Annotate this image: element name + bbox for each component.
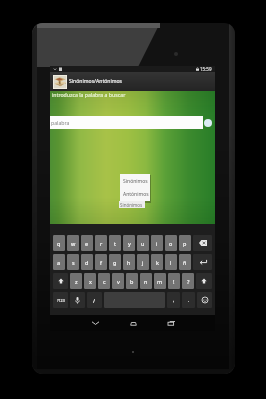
button[interactable]: h xyxy=(123,254,135,270)
button[interactable]: x xyxy=(84,273,96,289)
button[interactable]: Home xyxy=(121,315,145,331)
button[interactable]: palabra xyxy=(50,116,203,129)
button[interactable]: w xyxy=(67,235,79,251)
staticText: 15:59 xyxy=(200,66,212,72)
staticText: Sinónimos xyxy=(120,202,143,208)
staticText: w xyxy=(71,240,76,247)
staticText: , xyxy=(173,297,175,304)
staticText: t xyxy=(114,240,116,247)
staticText: ñ xyxy=(183,259,187,266)
staticText: introduzca la palabra a buscar xyxy=(52,91,126,98)
staticText: ?123 xyxy=(57,298,65,303)
button[interactable]: d xyxy=(81,254,93,270)
staticText: o xyxy=(169,240,173,247)
staticText: Antónimos xyxy=(123,191,149,198)
button[interactable]: , xyxy=(167,292,180,308)
staticText: d xyxy=(85,259,89,266)
button[interactable]: k xyxy=(151,254,163,270)
staticText: e xyxy=(85,240,89,247)
staticText: y xyxy=(128,240,131,247)
button[interactable]: . xyxy=(182,292,195,308)
button[interactable]: c xyxy=(98,273,110,289)
staticText: h xyxy=(127,259,131,266)
staticText: palabra xyxy=(51,119,70,126)
button[interactable]: ! xyxy=(168,273,180,289)
button[interactable]: m xyxy=(154,273,166,289)
staticText: Sinónimos/Antónimos xyxy=(69,78,123,85)
button[interactable]: Voice input xyxy=(70,292,85,308)
staticText: a xyxy=(57,259,61,266)
button[interactable]: Recents xyxy=(159,315,183,331)
staticText: n xyxy=(144,278,148,285)
button[interactable]: p xyxy=(179,235,191,251)
button[interactable]: Antónimos xyxy=(120,188,150,201)
button[interactable]: q xyxy=(53,235,65,251)
button[interactable]: o xyxy=(165,235,177,251)
staticText: r xyxy=(100,240,103,247)
other: App icon xyxy=(53,75,67,89)
staticText: u xyxy=(141,240,145,247)
button[interactable]: z xyxy=(70,273,82,289)
button[interactable]: u xyxy=(137,235,149,251)
button[interactable]: Back xyxy=(83,315,107,331)
staticText: z xyxy=(75,278,78,285)
staticText: s xyxy=(72,259,75,266)
button[interactable]: n xyxy=(140,273,152,289)
staticText: v xyxy=(117,278,120,285)
staticText: b xyxy=(130,278,134,285)
button[interactable]: a xyxy=(53,254,65,270)
staticText: / xyxy=(93,297,96,304)
button[interactable]: i xyxy=(151,235,163,251)
staticText: l xyxy=(170,259,172,266)
staticText: p xyxy=(183,240,187,247)
button[interactable]: ?123 xyxy=(53,292,68,308)
staticText: ? xyxy=(187,278,190,285)
staticText: i xyxy=(156,240,158,247)
button[interactable]: App icon xyxy=(50,72,215,91)
button[interactable]: j xyxy=(137,254,149,270)
button[interactable]: Sinónimos xyxy=(119,201,145,208)
button[interactable]: Emoji xyxy=(197,292,212,308)
button[interactable]: t xyxy=(109,235,121,251)
staticText: ! xyxy=(173,278,175,285)
staticText: j xyxy=(142,259,144,266)
button[interactable]: ñ xyxy=(179,254,191,270)
button[interactable]: g xyxy=(109,254,121,270)
button[interactable]: Shift xyxy=(53,273,68,289)
button[interactable]: y xyxy=(123,235,135,251)
button[interactable]: v xyxy=(112,273,124,289)
button[interactable]: r xyxy=(95,235,107,251)
staticText: m xyxy=(157,278,163,285)
staticText: . xyxy=(188,297,190,304)
staticText: f xyxy=(100,259,102,266)
staticText: x xyxy=(89,278,92,285)
button[interactable]: ? xyxy=(182,273,194,289)
staticText: c xyxy=(103,278,106,285)
button[interactable]: f xyxy=(95,254,107,270)
staticText: Sinónimos xyxy=(123,178,148,185)
button[interactable]: Enter xyxy=(193,254,212,270)
button[interactable]: Sinónimos xyxy=(120,174,150,188)
button[interactable]: b xyxy=(126,273,138,289)
button[interactable]: l xyxy=(165,254,177,270)
button[interactable]: Backspace xyxy=(193,235,212,251)
staticText: q xyxy=(57,240,61,247)
button[interactable]: s xyxy=(67,254,79,270)
button[interactable]: e xyxy=(81,235,93,251)
staticText: g xyxy=(113,259,117,266)
button[interactable]: Shift xyxy=(196,273,212,289)
staticText: k xyxy=(156,259,159,266)
button[interactable]: / xyxy=(87,292,102,308)
button[interactable]: Buscar xyxy=(204,119,212,127)
